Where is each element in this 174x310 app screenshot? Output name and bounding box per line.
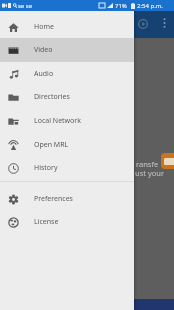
button[interactable]: More options [155,14,173,32]
button[interactable]: Preferences [0,187,134,211]
staticText: Audio [34,69,54,79]
staticText: Directories [34,92,70,102]
staticText: ust your [135,168,164,178]
button[interactable]: Refresh [133,14,153,34]
staticText: License [34,217,59,227]
staticText: Home [34,22,54,32]
button[interactable]: Directories [0,85,134,109]
staticText: 71% [115,2,127,10]
button[interactable]: Open MRL [0,133,134,157]
staticText: Preferences [34,194,73,204]
staticText: Video [34,45,53,55]
staticText: se se [18,2,33,10]
staticText: Local Network [34,116,81,126]
button[interactable]: License [0,210,134,234]
button[interactable]: History [0,156,134,180]
staticText: ransfe [136,159,159,169]
staticText: 2:54 p.m. [137,2,163,10]
staticText: History [34,163,58,173]
button[interactable]: Audio [0,62,134,86]
button[interactable]: Local Network [0,109,134,133]
button[interactable]: Home [0,15,134,39]
button[interactable]: Video [0,38,134,62]
staticText: Open MRL [34,140,69,150]
